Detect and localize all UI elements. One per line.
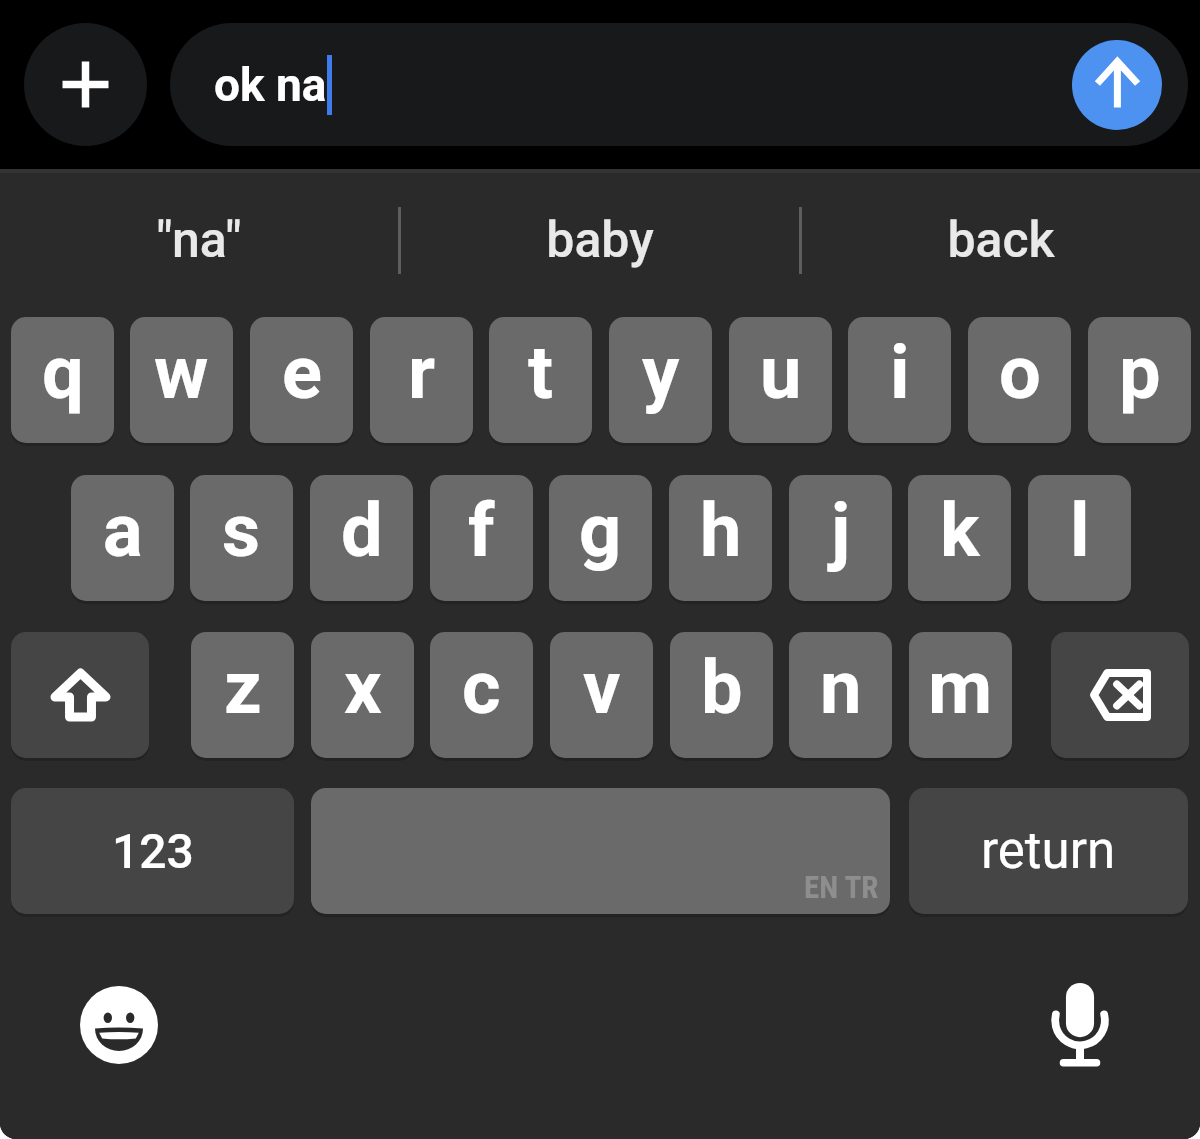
staticText: n [820,644,862,731]
staticText: u [760,329,802,416]
staticText: s [222,487,261,574]
staticText: k [940,487,980,574]
staticText: g [579,487,622,574]
button[interactable]: Space [311,788,890,914]
staticText: x [344,644,382,731]
button[interactable]: Shift [11,632,149,758]
staticText: 123 [112,823,194,879]
staticText: i [890,329,910,416]
button[interactable]: Backspace [1051,632,1189,758]
button[interactable]: j [789,475,892,601]
button[interactable]: x [311,632,414,758]
button[interactable]: d [310,475,413,601]
button[interactable]: g [549,475,652,601]
staticText: f [468,487,495,574]
staticText: ″na″ [156,211,242,270]
button[interactable]: Send [1072,40,1162,130]
staticText: l [1070,487,1090,574]
button[interactable]: n [789,632,892,758]
button[interactable]: ok na [170,23,1188,146]
button[interactable]: return [909,788,1188,914]
button[interactable]: f [430,475,533,601]
staticText: d [341,487,383,574]
button[interactable]: s [190,475,293,601]
staticText: h [700,487,742,574]
button[interactable]: a [71,475,174,601]
button[interactable]: Voice input [1019,964,1141,1086]
button[interactable]: q [11,317,114,443]
staticText: q [42,329,84,416]
staticText: c [462,644,501,731]
staticText: ok na [214,58,327,112]
button[interactable]: h [669,475,772,601]
button[interactable]: t [489,317,592,443]
button[interactable]: back [802,190,1200,290]
button[interactable]: r [370,317,473,443]
staticText: z [224,644,262,731]
button[interactable]: c [430,632,533,758]
button[interactable]: o [968,317,1071,443]
button[interactable]: l [1028,475,1131,601]
staticText: o [999,329,1041,416]
button[interactable]: e [250,317,353,443]
button[interactable]: b [670,632,773,758]
staticText: b [701,644,743,731]
button[interactable]: w [130,317,233,443]
button[interactable]: k [908,475,1011,601]
staticText: t [528,329,554,416]
staticText: back [947,211,1055,270]
staticText: v [583,644,621,731]
staticText: a [103,487,143,574]
staticText: j [831,487,851,574]
staticText: w [154,329,209,416]
staticText: y [642,329,680,416]
button[interactable]: p [1088,317,1191,443]
staticText: baby [546,211,654,270]
button[interactable]: i [848,317,951,443]
button[interactable]: z [191,632,294,758]
button[interactable]: u [729,317,832,443]
button[interactable]: ″na″ [0,190,398,290]
button[interactable]: m [909,632,1012,758]
button[interactable]: y [609,317,712,443]
button[interactable]: 123 [11,788,294,914]
staticText: p [1119,329,1161,416]
button[interactable]: Emoji [58,964,180,1086]
staticText: r [408,329,436,416]
staticText: m [928,644,993,731]
staticText: e [282,329,322,416]
button[interactable]: baby [401,190,799,290]
staticText: return [981,821,1116,881]
staticText: EN TR [804,869,879,905]
button[interactable]: v [550,632,653,758]
button[interactable]: Add attachment [24,23,147,146]
